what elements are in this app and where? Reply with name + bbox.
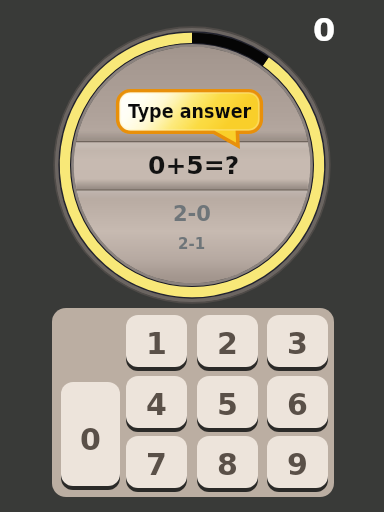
button[interactable]: 6: [267, 376, 328, 428]
staticText: 1: [146, 326, 167, 361]
staticText: 5: [217, 387, 238, 422]
staticText: 6: [287, 387, 308, 422]
staticText: 2-1: [178, 235, 206, 252]
staticText: 9: [287, 447, 308, 482]
staticText: 2: [217, 326, 238, 361]
button[interactable]: 2: [197, 315, 258, 367]
button[interactable]: 3: [267, 315, 328, 367]
button[interactable]: 7: [126, 436, 187, 488]
staticText: 3: [287, 326, 308, 361]
staticText: Type answer: [128, 100, 252, 123]
button[interactable]: Type answer: [116, 89, 263, 146]
staticText: 2-0: [173, 202, 211, 226]
staticText: 4: [146, 387, 167, 422]
button[interactable]: 9: [267, 436, 328, 488]
button[interactable]: 0: [61, 382, 120, 486]
staticText: 0: [313, 11, 336, 48]
staticText: 0+5=?: [148, 151, 240, 180]
staticText: 7: [146, 447, 167, 482]
staticText: 0: [80, 422, 101, 457]
button[interactable]: 5: [197, 376, 258, 428]
button[interactable]: 8: [197, 436, 258, 488]
button[interactable]: 4: [126, 376, 187, 428]
button[interactable]: 1: [126, 315, 187, 367]
staticText: 8: [217, 447, 238, 482]
